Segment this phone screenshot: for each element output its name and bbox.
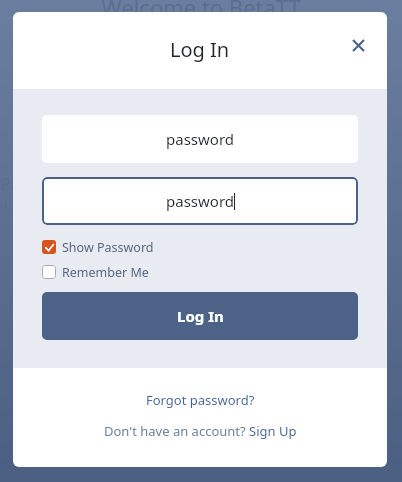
button[interactable]: Don't have an account? Sign Up xyxy=(104,422,297,440)
staticText: The simple way to organise your whole se… xyxy=(0,26,402,44)
staticText: Don't have an account? Sign Up xyxy=(104,422,297,440)
button[interactable]: password xyxy=(42,115,358,163)
staticText: password xyxy=(166,129,234,149)
staticText: Forgot password? xyxy=(146,391,255,409)
button[interactable]: Remember Me xyxy=(42,261,149,283)
button[interactable]: Show Password xyxy=(42,236,154,258)
staticText: password xyxy=(166,191,234,211)
staticText: Welcome to BetaTT xyxy=(0,0,402,22)
staticText: Log In xyxy=(177,306,224,326)
staticText: Log In xyxy=(170,36,230,63)
staticText: Remember Me xyxy=(62,264,149,281)
staticText: Show Password xyxy=(62,239,154,256)
button[interactable]: Forgot password? xyxy=(146,391,255,409)
button[interactable]: password xyxy=(42,177,358,225)
button[interactable]: Log In xyxy=(42,292,358,340)
button[interactable]: Close xyxy=(341,28,375,62)
staticText: Pa xyxy=(0,172,20,195)
